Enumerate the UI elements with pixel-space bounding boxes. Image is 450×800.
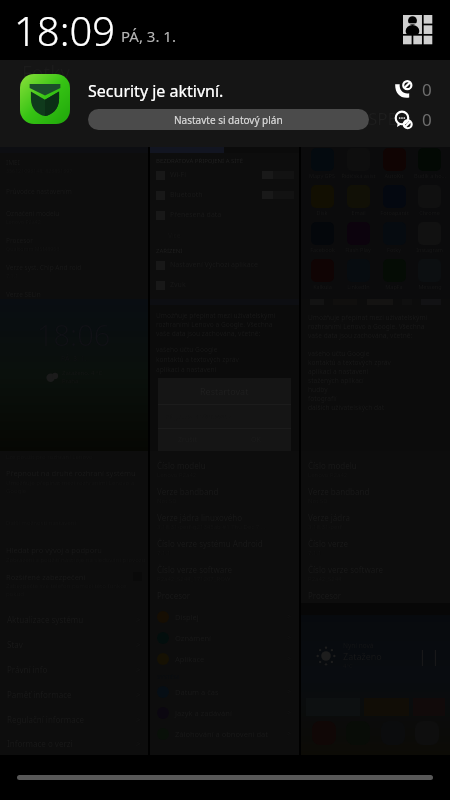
button[interactable]: Mapy GPS (301, 147, 450, 299)
button[interactable]: BEZDRÁTOVÁ PŘIPOJENÍ A SÍTĚ (150, 147, 299, 299)
staticText: 18:09 (14, 3, 116, 57)
staticText: PÁ, 3. 1. (121, 26, 176, 46)
staticText: SPE... (368, 107, 411, 130)
button[interactable]: Nyní nová (301, 603, 450, 755)
staticText: BEZDRÁTOVÁ PŘIPOJENÍ A SÍTĚ (156, 157, 244, 165)
button[interactable]: Security (20, 74, 70, 124)
button[interactable]: Nastavte si datový plán (88, 109, 369, 130)
staticText: Security je aktivní. (88, 80, 224, 102)
button[interactable]: Switch user (398, 10, 438, 50)
button[interactable]: Home (17, 775, 433, 780)
button[interactable]: 18:06 (0, 299, 148, 451)
button[interactable]: Umožňuje přepínat mezi uživatelskými roz… (150, 299, 299, 451)
staticText: | | (418, 645, 440, 667)
